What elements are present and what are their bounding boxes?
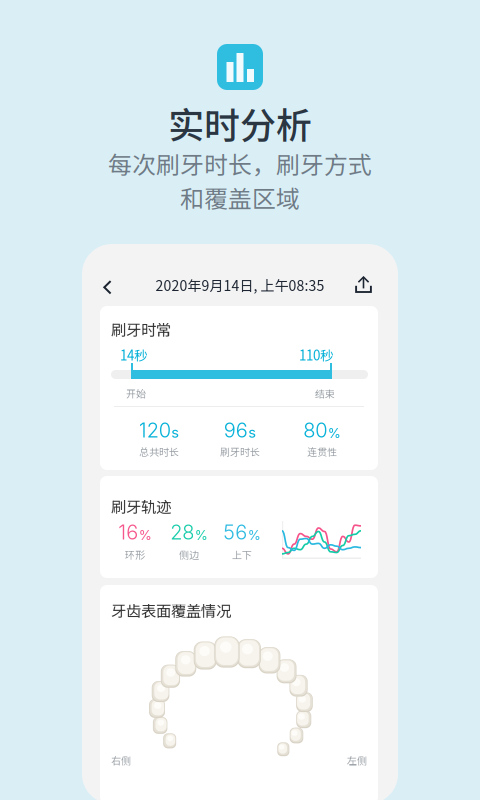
staticText: 牙齿表面覆盖情况 — [111, 599, 231, 621]
staticText: 结束 — [315, 386, 335, 400]
staticText: % — [248, 527, 261, 543]
staticText: 16 — [118, 520, 138, 544]
staticText: 连贯性 — [307, 444, 337, 459]
staticText: 110秒 — [299, 345, 333, 364]
staticText: 右侧 — [111, 753, 131, 767]
staticText: % — [195, 527, 208, 543]
staticText: 环形 — [125, 547, 145, 562]
staticText: 120 — [139, 418, 171, 442]
staticText: 实时分析 — [168, 97, 312, 149]
staticText: s — [171, 423, 179, 441]
staticText: 每次刷牙时长，刷牙方式 — [108, 146, 372, 181]
staticText: 上下 — [232, 547, 252, 562]
staticText: 刷牙时长 — [220, 444, 260, 459]
staticText: 开始 — [126, 386, 146, 400]
staticText: 56 — [223, 520, 247, 544]
staticText: 侧边 — [179, 547, 199, 562]
staticText: 左侧 — [347, 753, 367, 767]
staticText: 总共时长 — [139, 444, 179, 459]
staticText: 96 — [224, 418, 248, 442]
staticText: 刷牙轨迹 — [111, 495, 171, 517]
staticText: 80 — [303, 418, 327, 442]
staticText: % — [139, 527, 152, 543]
staticText: 28 — [170, 520, 194, 544]
staticText: s — [248, 423, 256, 441]
staticText: 刷牙时常 — [111, 318, 171, 340]
staticText: 2020年9月14日, 上午08:35 — [155, 275, 324, 295]
staticText: % — [328, 425, 341, 441]
button[interactable]: Back — [90, 267, 127, 308]
button[interactable]: Share — [340, 263, 385, 306]
staticText: 14秒 — [120, 345, 147, 364]
staticText: 和覆盖区域 — [180, 180, 300, 215]
